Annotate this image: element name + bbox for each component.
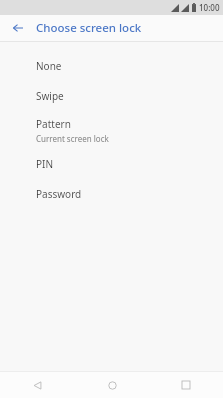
button[interactable]: Back [8,18,28,38]
button[interactable]: Back [0,372,75,398]
button[interactable]: Swipe [0,81,223,111]
button[interactable]: Recent apps [149,372,223,398]
staticText: None [36,59,62,73]
staticText: 10:00 [199,2,220,13]
button[interactable]: None [0,51,223,81]
staticText: Password [36,187,82,201]
button[interactable]: Password [0,179,223,209]
staticText: Pattern [36,117,71,131]
button[interactable]: Home [75,372,149,398]
staticText: Choose screen lock [36,20,142,36]
staticText: PIN [36,157,54,171]
staticText: Swipe [36,89,64,103]
staticText: Current screen lock [36,133,109,144]
button[interactable]: PIN [0,149,223,179]
button[interactable]: Pattern [0,111,223,149]
